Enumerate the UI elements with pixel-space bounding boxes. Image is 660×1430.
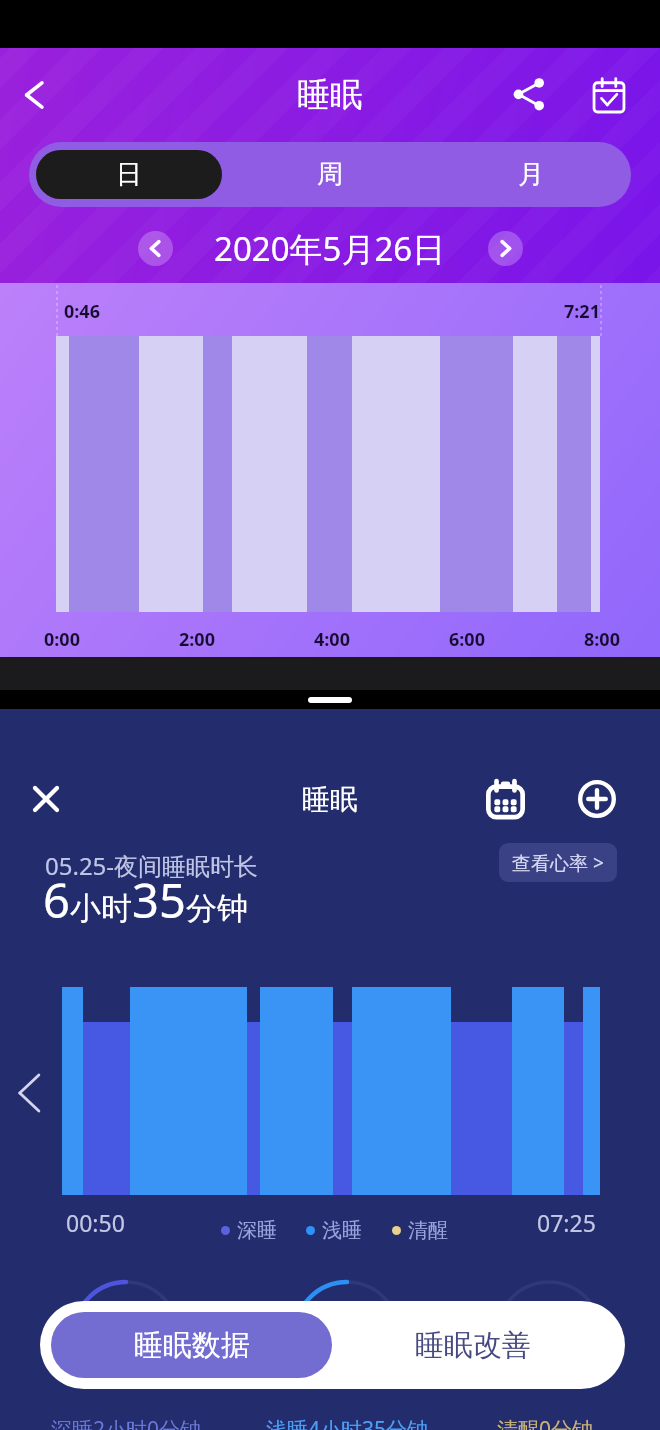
button[interactable]: 睡眠数据 xyxy=(51,1312,332,1378)
staticText: 查看心率 > xyxy=(512,850,604,876)
staticText: 2:00 xyxy=(179,627,215,652)
staticText: 35 xyxy=(132,868,186,932)
staticText: 0:00 xyxy=(44,627,80,652)
button[interactable]: Back xyxy=(8,70,58,120)
staticText: 浅睡4小时35分钟 xyxy=(266,1415,429,1430)
button[interactable]: 睡眠改善 xyxy=(332,1312,614,1378)
button[interactable]: Close xyxy=(21,774,71,824)
staticText: 05.25-夜间睡眠时长 xyxy=(45,849,259,882)
staticText: 清醒0分钟 xyxy=(497,1415,594,1430)
staticText: 清醒 xyxy=(408,1218,448,1243)
staticText: 分钟 xyxy=(186,889,248,928)
staticText: 睡眠 xyxy=(297,74,363,116)
button[interactable]: 月 xyxy=(437,150,624,199)
button[interactable]: Previous xyxy=(6,1070,52,1116)
staticText: 4:00 xyxy=(314,627,350,652)
button[interactable]: 查看心率 > xyxy=(499,843,617,882)
button[interactable]: 日 xyxy=(36,150,222,199)
staticText: 深睡 xyxy=(237,1218,277,1243)
staticText: 7:21 xyxy=(564,299,600,324)
button[interactable]: 周 xyxy=(236,150,423,199)
button[interactable]: Share xyxy=(500,67,556,123)
staticText: 小时 xyxy=(70,889,132,928)
staticText: 睡眠数据 xyxy=(134,1327,250,1364)
staticText: 深睡2小时0分钟 xyxy=(51,1415,202,1430)
staticText: 浅睡 xyxy=(322,1218,362,1243)
staticText: 0:46 xyxy=(64,299,100,324)
button[interactable]: Next day xyxy=(488,231,523,266)
button[interactable]: Calendar xyxy=(480,774,530,824)
staticText: 月 xyxy=(518,158,544,191)
staticText: 周 xyxy=(317,158,343,191)
staticText: 6 xyxy=(43,868,70,932)
staticText: 睡眠 xyxy=(302,782,358,817)
staticText: 6:00 xyxy=(449,627,485,652)
staticText: 睡眠改善 xyxy=(415,1327,531,1364)
staticText: 日 xyxy=(116,158,142,191)
button[interactable]: Calendar xyxy=(581,67,637,123)
staticText: 8:00 xyxy=(584,627,620,652)
button[interactable]: Previous day xyxy=(138,231,173,266)
button[interactable]: Add xyxy=(572,774,622,824)
staticText: 07:25 xyxy=(537,1207,596,1238)
staticText: 00:50 xyxy=(66,1207,125,1238)
staticText: 2020年5月26日 xyxy=(214,226,446,271)
